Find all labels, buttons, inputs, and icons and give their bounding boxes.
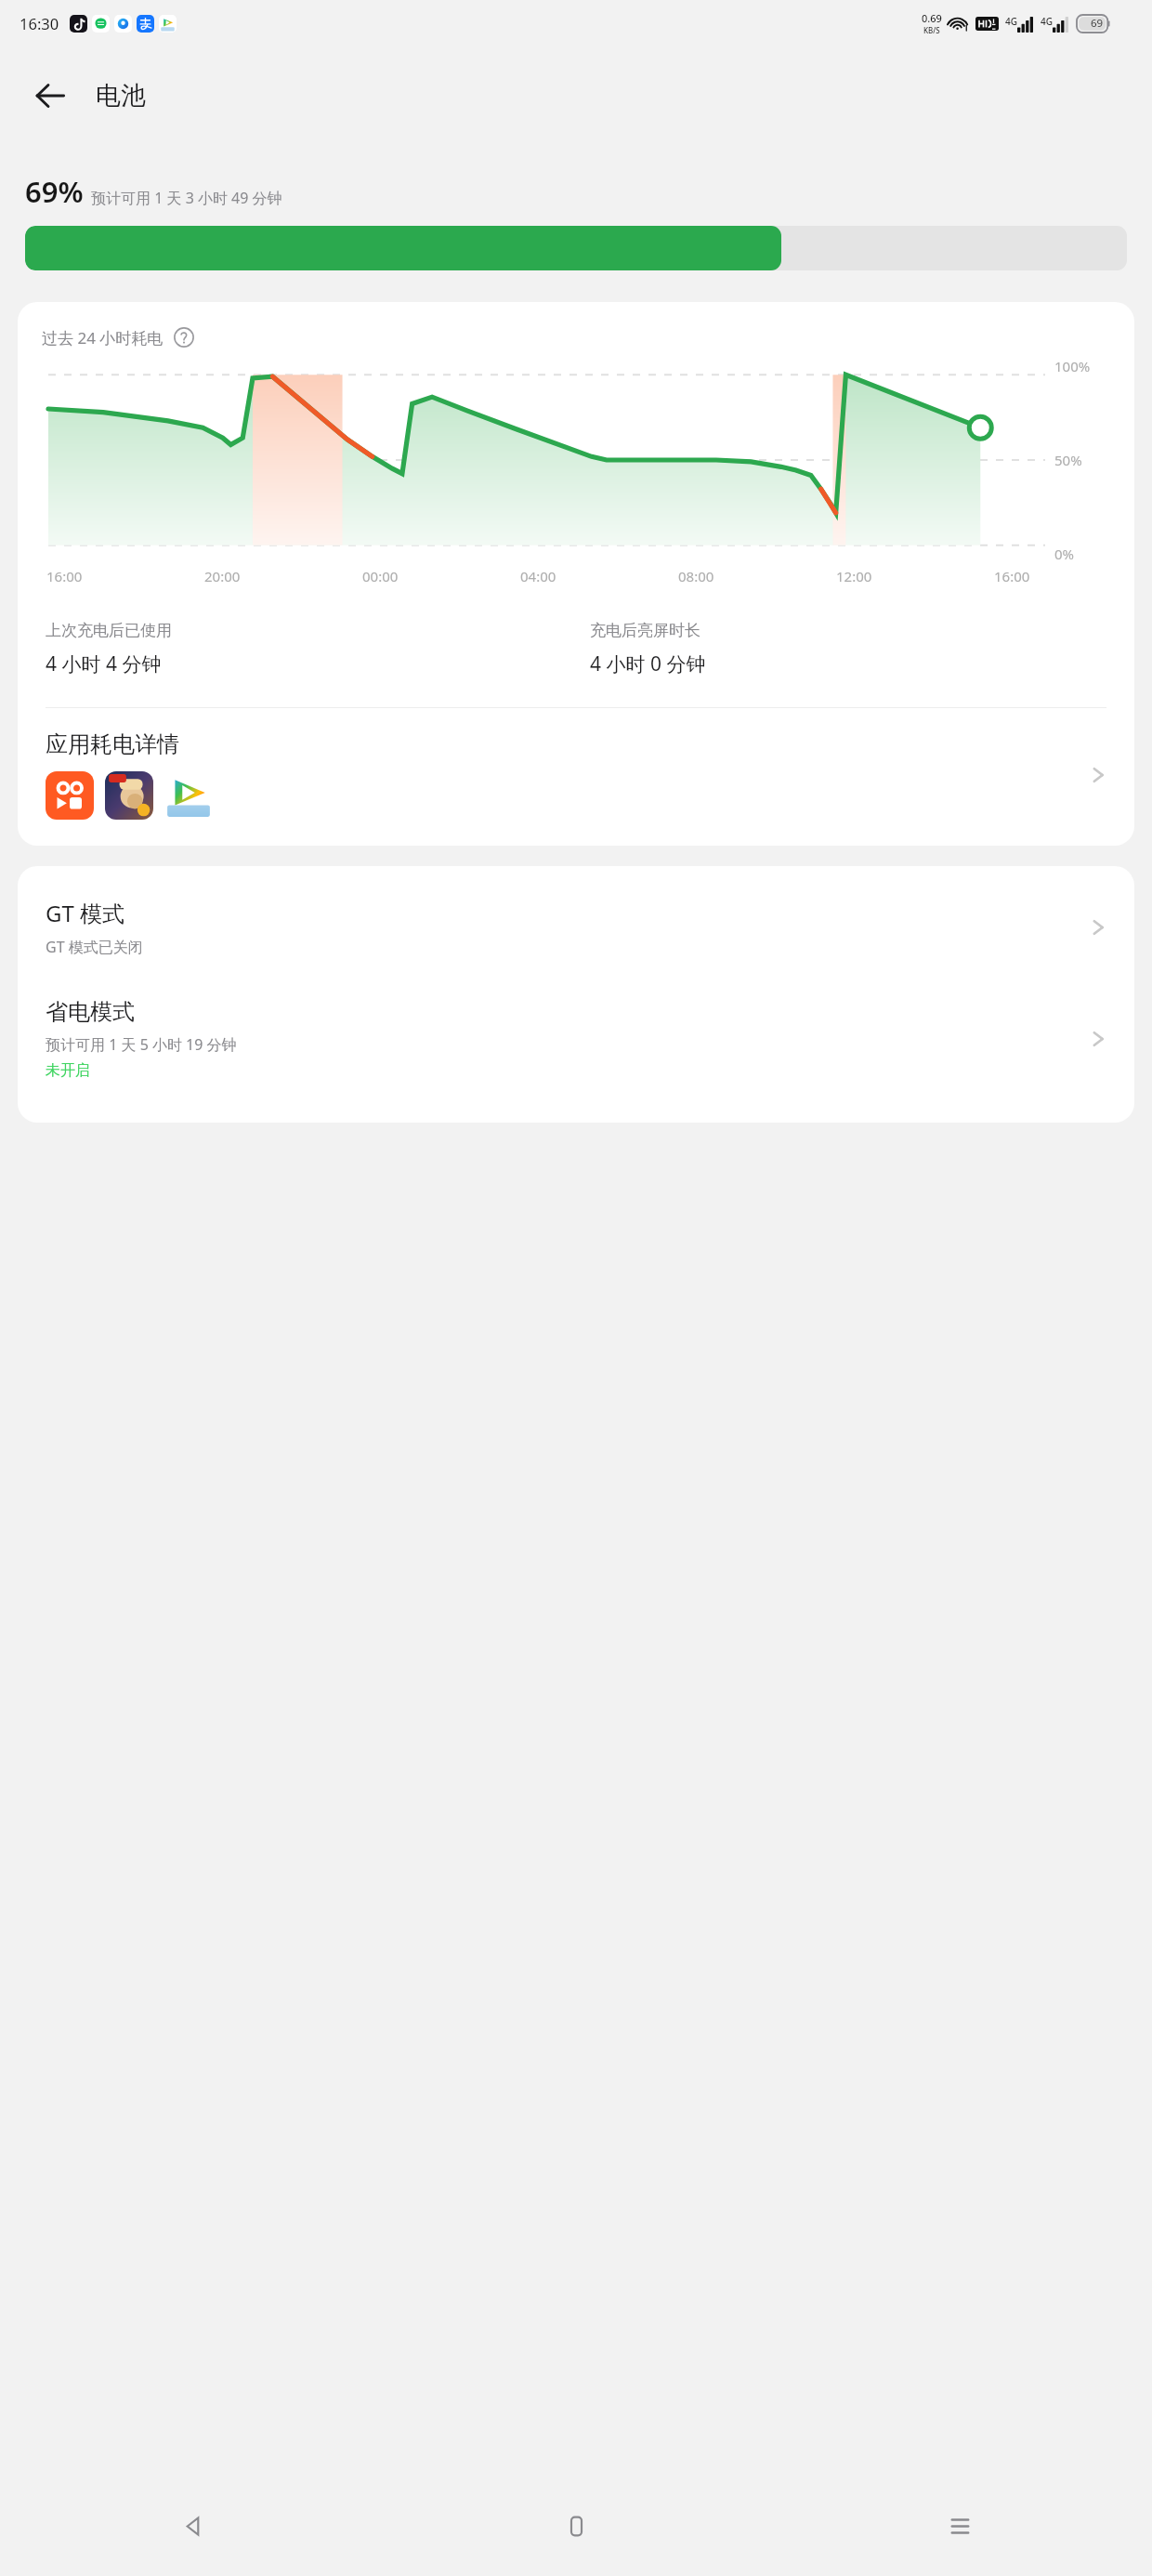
other: Open: [1086, 1027, 1110, 1051]
staticText: 04:00: [520, 567, 556, 585]
staticText: 预计可用 1 天 5 小时 19 分钟: [46, 1034, 237, 1055]
staticText: 0%: [1054, 545, 1075, 563]
staticText: 预计可用 1 天 3 小时 49 分钟: [91, 188, 282, 208]
staticText: 69%: [25, 172, 84, 211]
staticText: 电池: [96, 80, 146, 112]
staticText: 4 小时 4 分钟: [46, 651, 162, 677]
staticText: 00:00: [362, 567, 399, 585]
staticText: 16:00: [46, 567, 83, 585]
button[interactable]: GT 模式: [18, 866, 1134, 979]
button[interactable]: Back: [0, 2476, 385, 2576]
staticText: 20:00: [204, 567, 241, 585]
staticText: 应用耗电详情: [46, 730, 179, 758]
staticText: 69: [1091, 16, 1104, 31]
staticText: 过去 24 小时耗电: [42, 327, 164, 348]
staticText: GT 模式: [46, 898, 125, 928]
staticText: 0.69: [922, 11, 942, 25]
button[interactable]: 应用耗电详情: [18, 708, 1134, 846]
staticText: 充电后亮屏时长: [590, 621, 700, 640]
staticText: 上次充电后已使用: [46, 621, 172, 640]
button[interactable]: Help: [172, 325, 196, 349]
staticText: 50%: [1054, 451, 1082, 469]
button[interactable]: Home: [385, 2476, 768, 2576]
staticText: 4 小时 0 分钟: [590, 651, 706, 677]
staticText: GT 模式已关闭: [46, 937, 143, 957]
other: Open: [1086, 915, 1110, 940]
staticText: 16:00: [994, 567, 1030, 585]
staticText: 08:00: [678, 567, 714, 585]
staticText: 省电模式: [46, 998, 135, 1026]
staticText: 4G: [1041, 15, 1053, 28]
staticText: 100%: [1054, 357, 1091, 375]
button[interactable]: Recents: [768, 2476, 1152, 2576]
button[interactable]: Back: [22, 68, 78, 124]
staticText: 12:00: [836, 567, 872, 585]
staticText: KB/S: [923, 25, 940, 35]
other: Open: [1086, 763, 1110, 787]
staticText: 未开启: [46, 1061, 90, 1080]
staticText: 4G: [1005, 15, 1017, 28]
staticText: 16:30: [20, 13, 59, 33]
button[interactable]: 省电模式: [18, 979, 1134, 1123]
